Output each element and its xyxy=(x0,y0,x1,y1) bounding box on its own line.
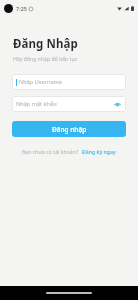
button[interactable]: Nhập Username xyxy=(12,74,126,90)
button[interactable]: Đăng ký ngay xyxy=(82,148,116,155)
staticText: Nhập mật khẩu xyxy=(16,100,57,108)
staticText: Nhập Username xyxy=(19,78,62,86)
button[interactable]: Nhập mật khẩu xyxy=(12,96,126,112)
button[interactable]: Hiện mật khẩu xyxy=(110,97,124,111)
staticText: 7:25 xyxy=(16,5,27,12)
staticText: Đăng nhập xyxy=(52,125,87,134)
staticText: Hãy đăng nhập để tiếp tục xyxy=(13,55,78,62)
staticText: Đăng ký ngay xyxy=(82,148,116,155)
staticText: Đăng Nhập xyxy=(13,36,78,52)
staticText: Bạn chưa có tài khoản? xyxy=(22,148,79,155)
button[interactable]: Đăng nhập xyxy=(12,121,126,137)
